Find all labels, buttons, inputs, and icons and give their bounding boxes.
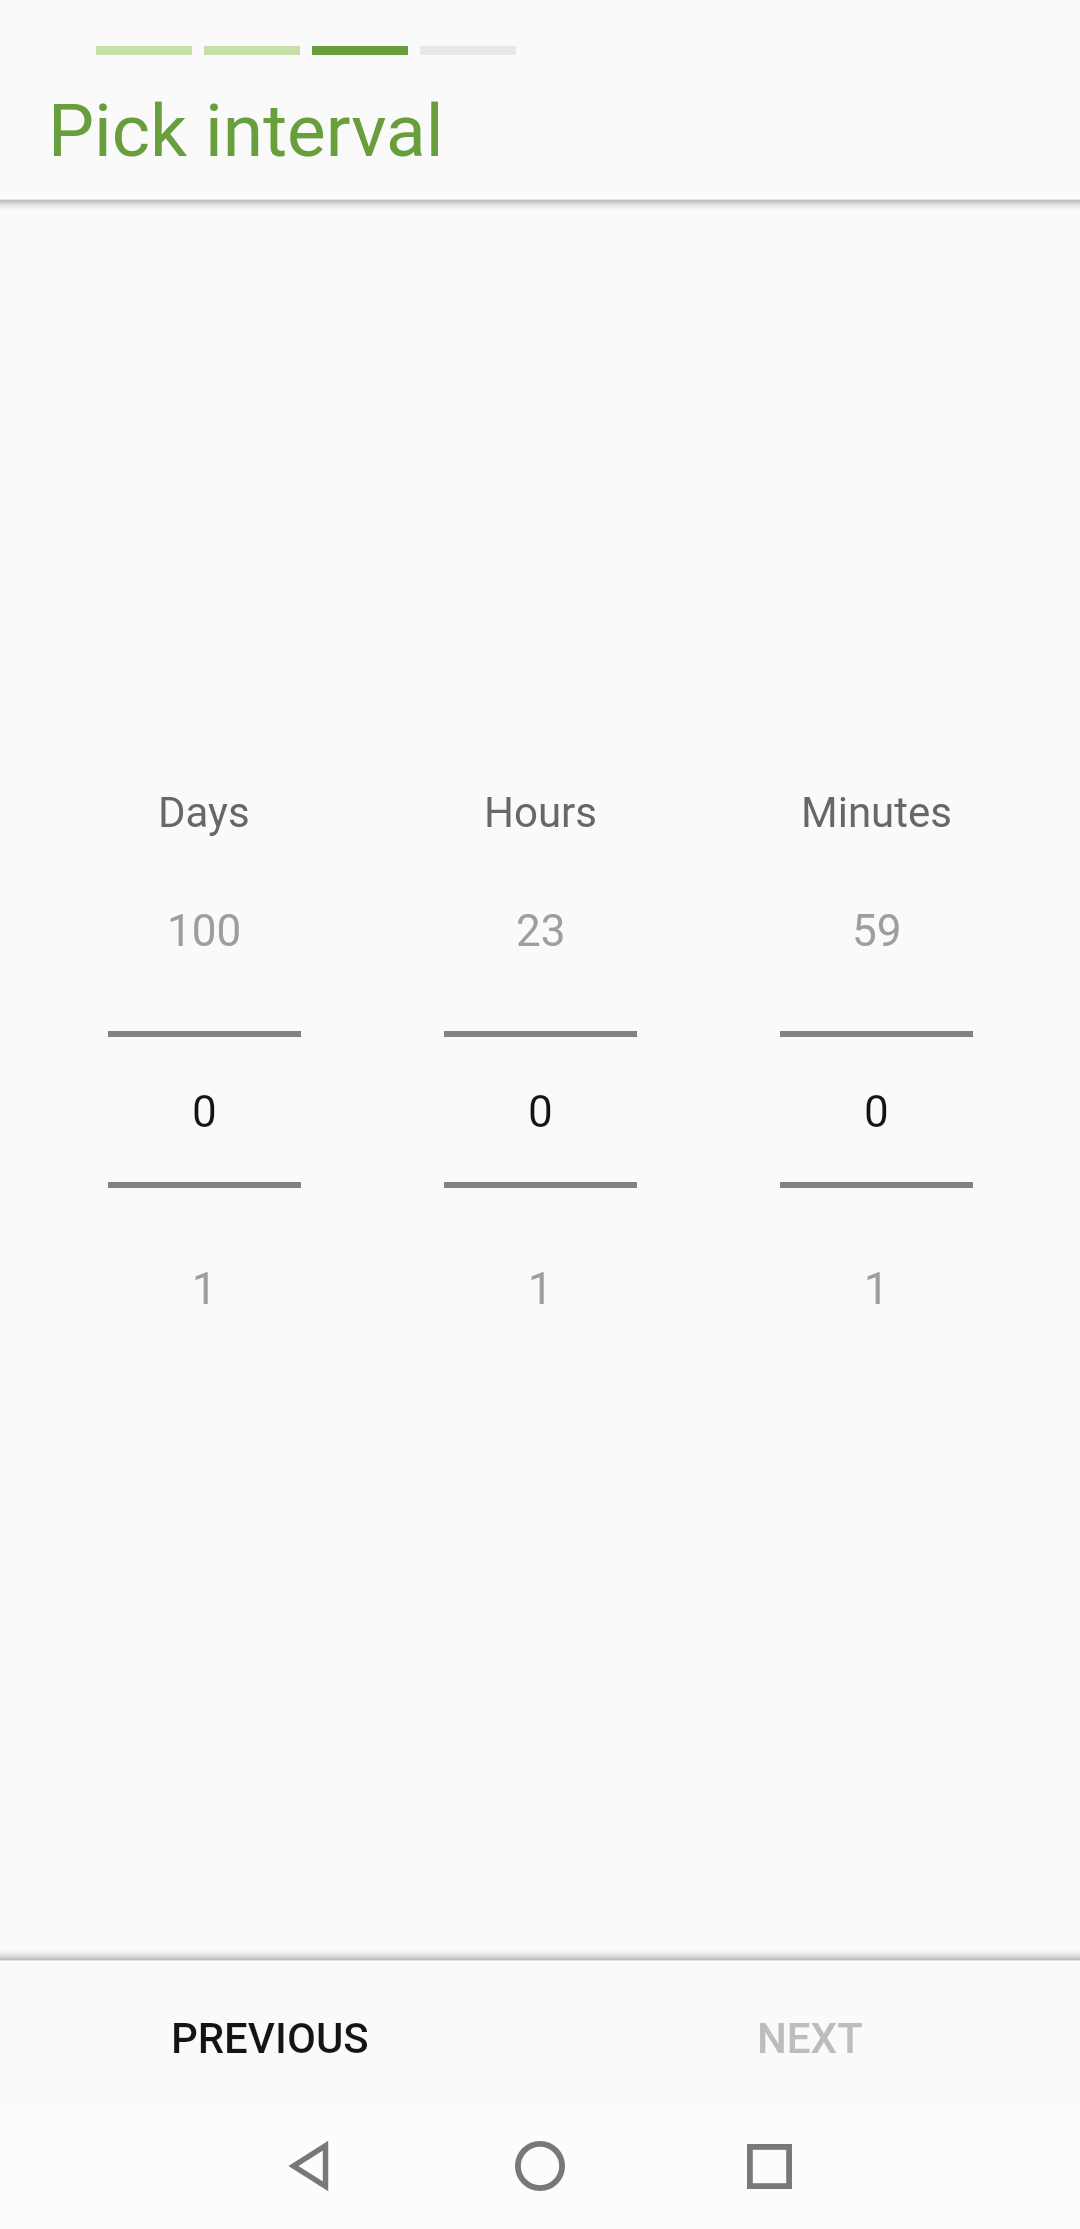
staticText: NEXT	[757, 2014, 863, 2063]
button[interactable]: 1	[780, 1263, 973, 1315]
button[interactable]: 59	[780, 905, 973, 957]
button[interactable]: NEXT	[540, 1965, 1080, 2104]
button[interactable]: 1	[108, 1263, 301, 1315]
staticText: 0	[528, 1086, 553, 1138]
button[interactable]: PREVIOUS	[0, 1965, 540, 2104]
staticText: Pick interval	[48, 88, 444, 174]
staticText: 59	[852, 905, 902, 957]
button[interactable]: Back	[268, 2126, 348, 2206]
staticText: 1	[192, 1263, 217, 1315]
button[interactable]: Home	[500, 2126, 580, 2206]
staticText: 23	[516, 905, 566, 957]
button[interactable]: 23	[444, 905, 637, 957]
button[interactable]: 0	[108, 1086, 301, 1138]
staticText: 1	[528, 1263, 553, 1315]
staticText: Days	[158, 788, 250, 837]
staticText: 0	[192, 1086, 217, 1138]
button[interactable]: 1	[444, 1263, 637, 1315]
button[interactable]: 0	[444, 1086, 637, 1138]
staticText: 100	[167, 905, 242, 957]
staticText: Hours	[484, 788, 597, 837]
button[interactable]: 0	[780, 1086, 973, 1138]
staticText: PREVIOUS	[171, 2014, 369, 2063]
button[interactable]: 100	[108, 905, 301, 957]
button[interactable]: Recent apps	[729, 2126, 809, 2206]
staticText: Minutes	[801, 788, 952, 837]
staticText: 1	[864, 1263, 889, 1315]
staticText: 0	[864, 1086, 889, 1138]
